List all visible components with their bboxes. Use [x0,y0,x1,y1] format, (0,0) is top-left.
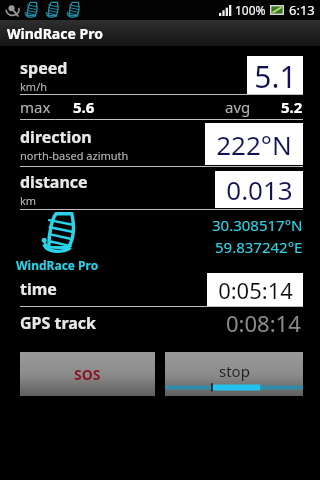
staticText: GPS track [20,312,97,334]
staticText: 100% [235,2,266,18]
button[interactable]: stop [165,352,303,396]
staticText: 0.013 [226,172,293,207]
staticText: 6:13 [289,1,315,19]
button[interactable]: speed [0,56,320,94]
staticText: 30.308517°N [212,215,303,235]
button[interactable]: direction [0,122,320,166]
staticText: stop [219,361,250,381]
staticText: 222°N [216,127,292,162]
staticText: direction [20,126,92,148]
staticText: 5.6 [73,97,95,117]
button[interactable]: WindRace Pro [16,210,99,272]
staticText: 59.837242°E [215,237,303,257]
staticText: distance [20,171,88,193]
staticText: km/h [20,79,48,94]
button[interactable]: max [0,95,320,119]
button[interactable]: distance [0,169,320,209]
button[interactable]: time [0,272,320,306]
staticText: avg [225,97,251,117]
staticText: 5.2 [281,97,303,117]
staticText: 0:08:14 [226,308,301,338]
button[interactable]: GPS track [0,307,320,339]
staticText: WindRace Pro [7,24,103,43]
staticText: north-based azimuth [20,148,129,163]
staticText: SOS [74,365,101,384]
staticText: max [20,97,51,117]
staticText: WindRace Pro [16,257,99,272]
staticText: 0:05:14 [218,275,293,305]
staticText: km [20,193,37,208]
button[interactable]: SOS [20,352,155,396]
staticText: time [20,278,57,300]
staticText: 5.1 [254,56,297,94]
staticText: speed [20,57,68,79]
